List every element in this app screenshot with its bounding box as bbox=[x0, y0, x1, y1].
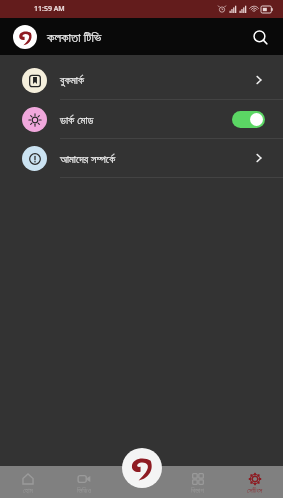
staticText: ভিডিও bbox=[77, 487, 92, 494]
staticText: বিভাগ bbox=[191, 487, 204, 494]
staticText: 11:59 AM bbox=[34, 4, 65, 14]
button[interactable]: ভিডিও bbox=[56, 470, 112, 494]
button[interactable]: ডার্ক মোড bbox=[0, 100, 283, 138]
button[interactable]: বুকমার্ক bbox=[0, 61, 283, 99]
button[interactable]: Live bbox=[122, 448, 162, 488]
staticText: হোম bbox=[23, 487, 33, 494]
staticText: বুকমার্ক bbox=[60, 75, 85, 86]
button[interactable]: আমাদের সম্পর্কে bbox=[0, 139, 283, 177]
staticText: আমাদের সম্পর্কে bbox=[60, 151, 116, 166]
button[interactable]: হোম bbox=[0, 470, 56, 494]
staticText: ডার্ক মোড bbox=[60, 112, 94, 127]
button[interactable]: Dark mode toggle bbox=[232, 111, 265, 128]
button[interactable]: সেটিংস bbox=[226, 470, 283, 494]
staticText: সেটিংস bbox=[247, 487, 263, 494]
staticText: কলকাতা টিভি bbox=[47, 28, 102, 46]
button[interactable]: Search bbox=[245, 22, 275, 52]
button[interactable]: বিভাগ bbox=[169, 470, 226, 494]
